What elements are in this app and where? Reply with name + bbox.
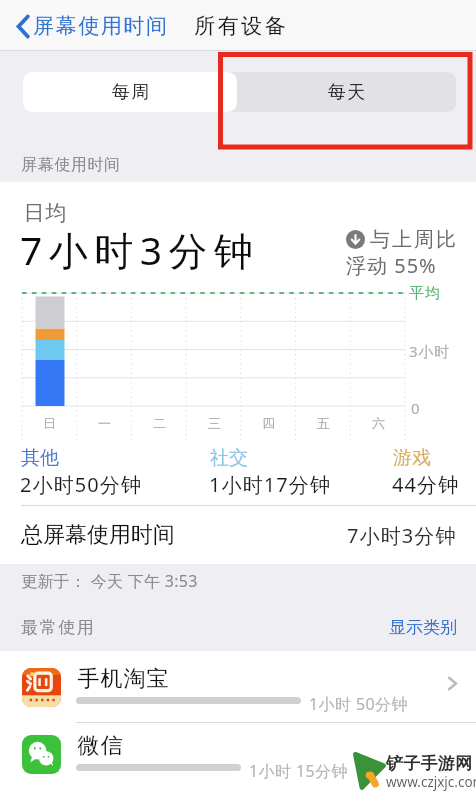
staticText: 屏幕使用时间 <box>33 13 169 39</box>
staticText: 总屏幕使用时间 <box>21 521 175 549</box>
staticText: 3小时 <box>409 341 450 361</box>
staticText: 44分钟 <box>392 471 460 498</box>
staticText: 社交 <box>210 446 248 470</box>
staticText: 平均 <box>409 284 441 303</box>
staticText: 1小时17分钟 <box>209 471 332 498</box>
staticText: 一 <box>98 415 111 431</box>
button[interactable]: 屏幕使用时间 <box>12 7 172 45</box>
staticText: 每天 <box>327 81 366 104</box>
staticText: 屏幕使用时间 <box>21 155 121 175</box>
staticText: 铲子手游网 <box>386 753 472 774</box>
staticText: 2小时50分钟 <box>20 471 143 498</box>
staticText: 0 <box>411 398 420 418</box>
staticText: 7小时3分钟 <box>20 223 260 276</box>
staticText: 最常使用 <box>21 617 96 638</box>
staticText: 1小时 50分钟 <box>309 693 408 715</box>
button[interactable]: 手机淘宝 <box>0 651 476 722</box>
button[interactable]: 显示类别 <box>389 617 457 638</box>
staticText: 二 <box>153 415 166 431</box>
staticText: 三 <box>208 415 221 431</box>
staticText: 7小时3分钟 <box>347 522 457 549</box>
staticText: 五 <box>317 415 330 431</box>
staticText: 六 <box>372 415 385 431</box>
staticText: 手机淘宝 <box>77 665 169 693</box>
staticText: 1小时 15分钟 <box>249 760 348 782</box>
other: More details <box>447 674 458 693</box>
button[interactable]: 每周 <box>23 72 237 112</box>
staticText: 日均 <box>23 200 67 226</box>
staticText: 每周 <box>111 81 150 104</box>
button[interactable]: 微信 <box>0 718 476 789</box>
staticText: 微信 <box>77 732 123 760</box>
staticText: www.czjxjc.com <box>386 773 476 791</box>
staticText: 更新于： 今天 下午 3:53 <box>21 570 198 592</box>
staticText: 日 <box>43 415 56 431</box>
staticText: 浮动 55% <box>346 252 437 279</box>
staticText: 所有设备 <box>193 13 287 39</box>
staticText: 四 <box>262 415 275 431</box>
staticText: 其他 <box>21 446 59 470</box>
staticText: 游戏 <box>393 446 431 470</box>
button[interactable]: 总屏幕使用时间 <box>21 506 457 564</box>
staticText: 与上周比 <box>369 227 457 252</box>
button[interactable]: 每天 <box>237 72 456 112</box>
